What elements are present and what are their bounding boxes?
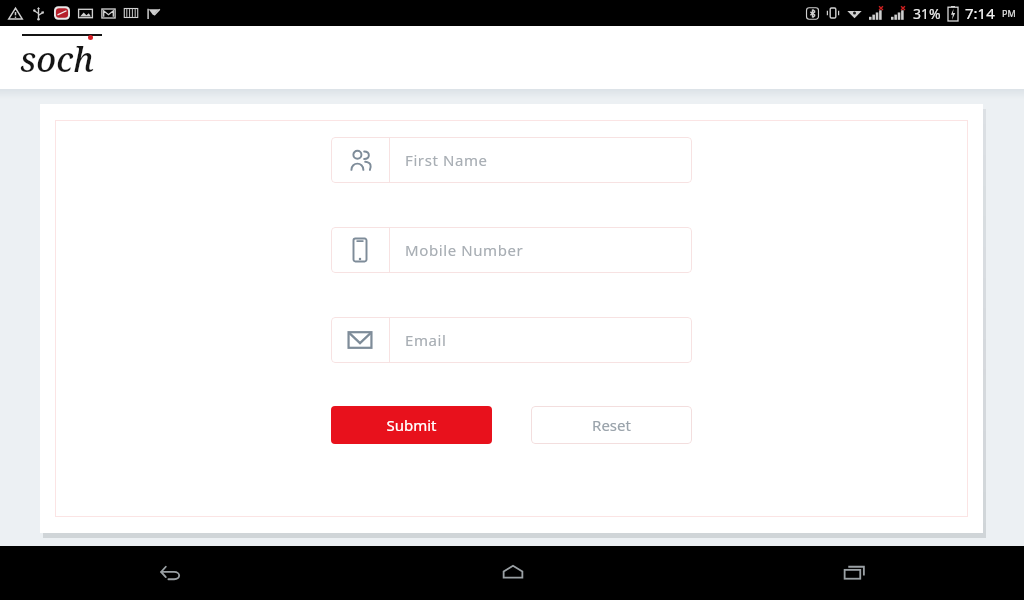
button[interactable]: Home bbox=[342, 546, 683, 600]
button[interactable]: First Name bbox=[331, 137, 692, 183]
staticText: First Name bbox=[405, 150, 488, 170]
button[interactable]: Email bbox=[331, 317, 692, 363]
staticText: Submit bbox=[386, 415, 437, 435]
button[interactable]: Recents bbox=[683, 546, 1024, 600]
button[interactable]: Submit bbox=[331, 406, 492, 444]
staticText: Reset bbox=[592, 415, 631, 435]
staticText: Email bbox=[405, 330, 447, 350]
staticText: 31% bbox=[913, 4, 941, 23]
button[interactable]: Reset bbox=[531, 406, 692, 444]
button[interactable]: soch bbox=[20, 34, 100, 82]
staticText: PM bbox=[1002, 7, 1016, 19]
button[interactable]: Mobile Number bbox=[331, 227, 692, 273]
button[interactable]: Back bbox=[0, 546, 342, 600]
staticText: soch bbox=[20, 36, 95, 82]
staticText: 7:14 bbox=[965, 3, 995, 23]
staticText: Mobile Number bbox=[405, 240, 524, 260]
